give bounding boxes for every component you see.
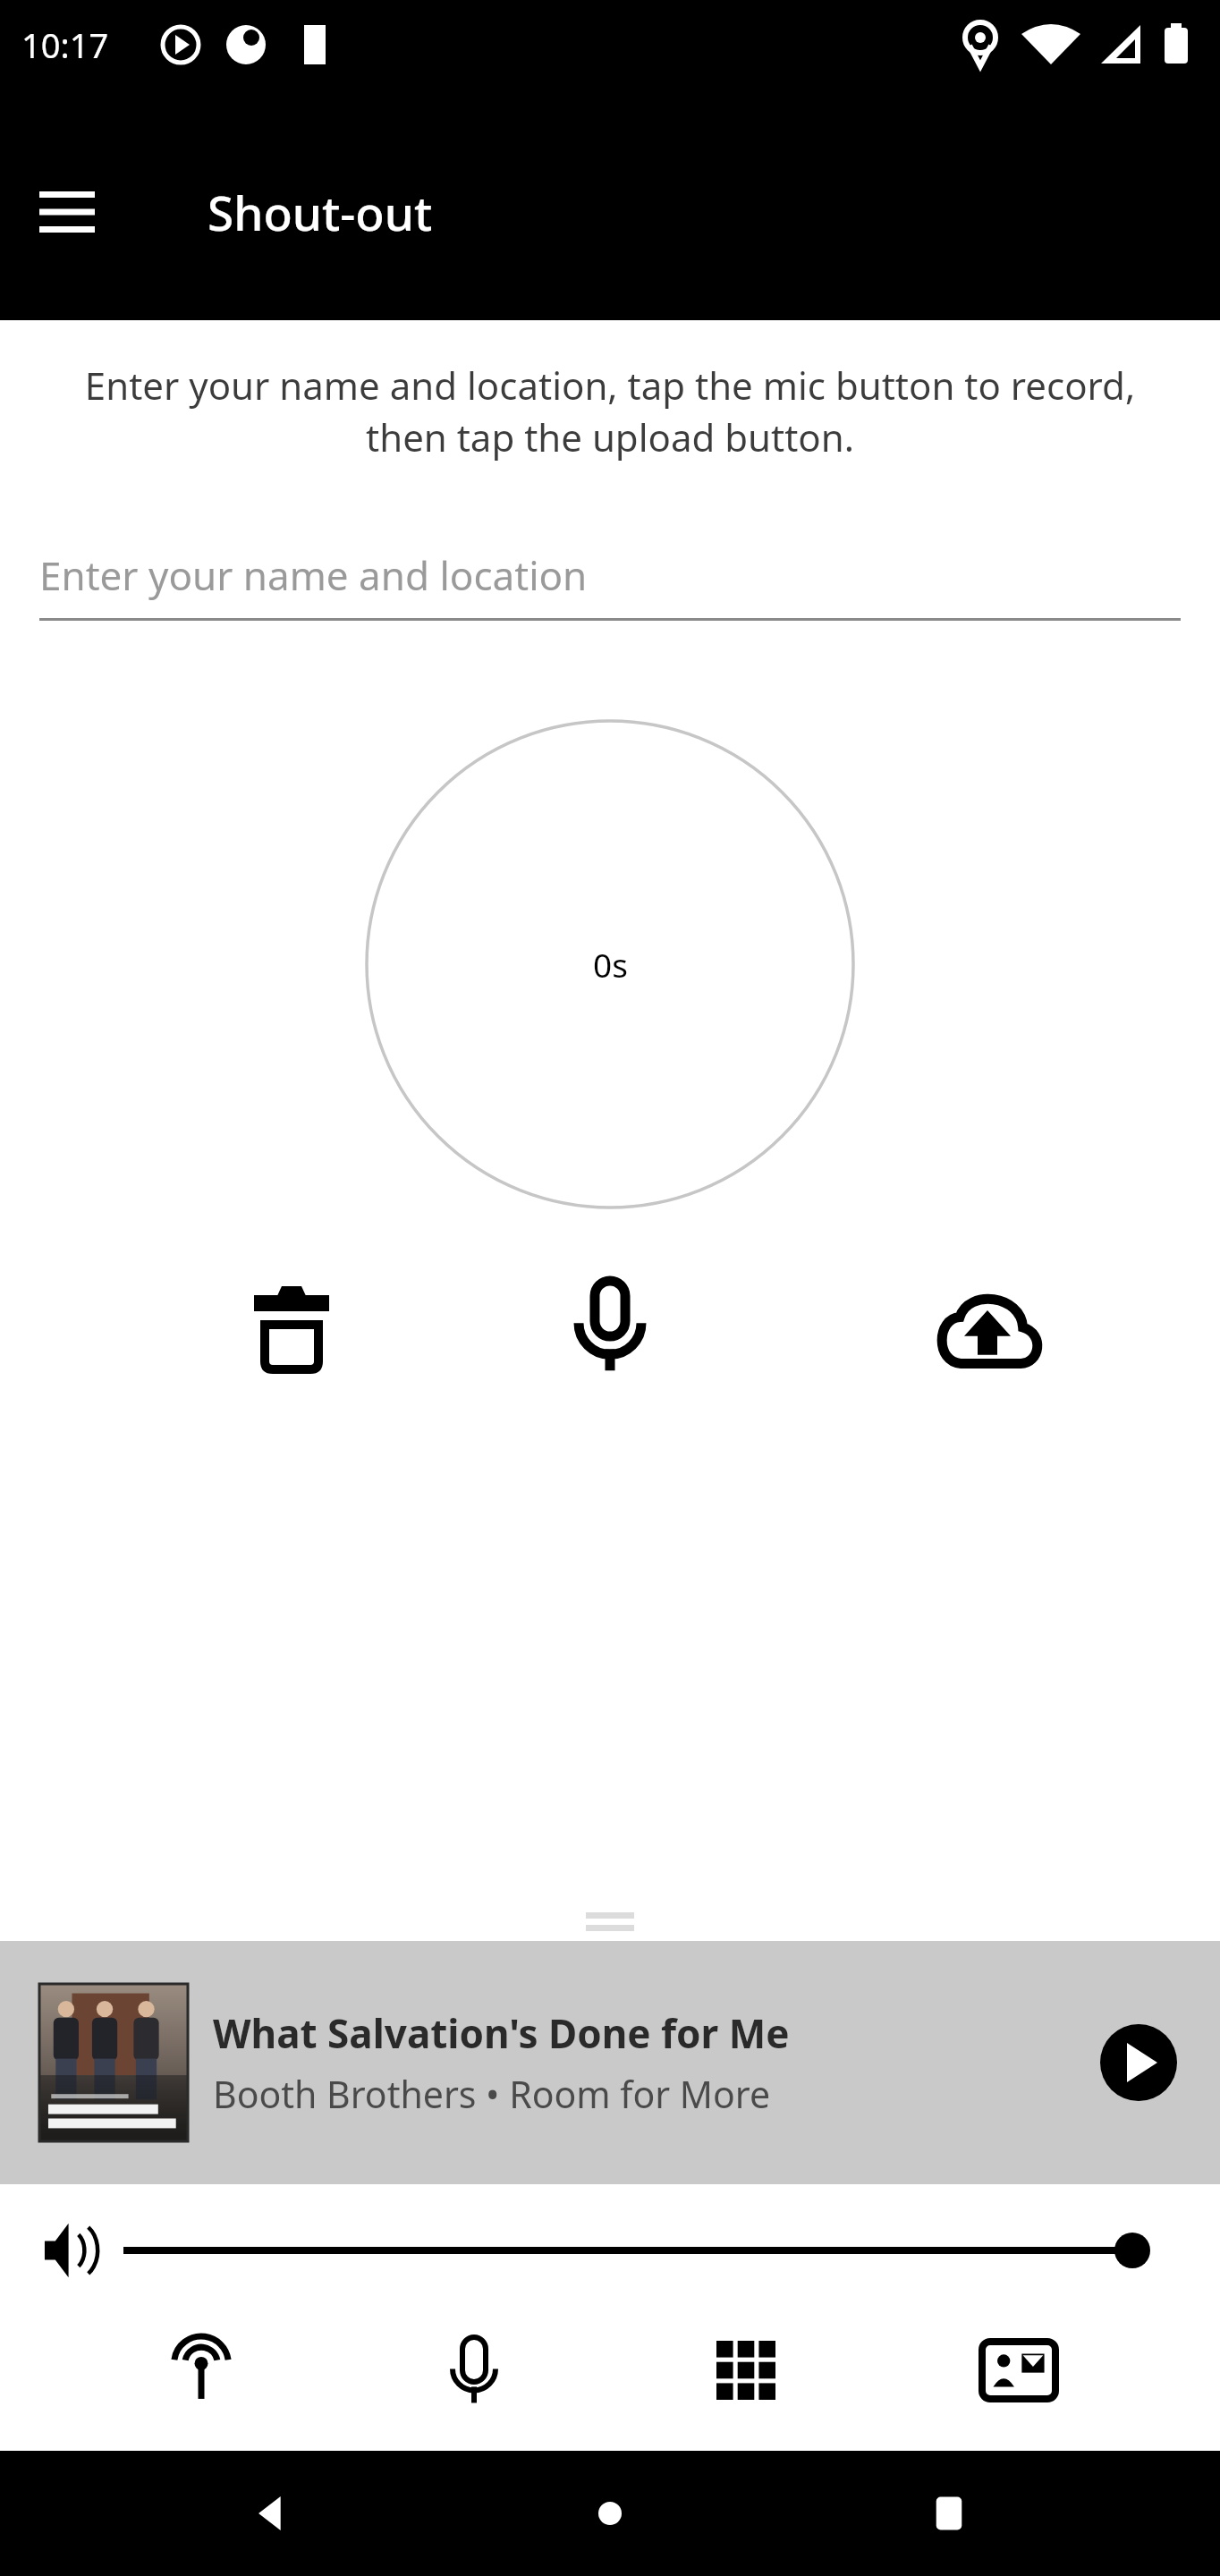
button[interactable]: Apps [674, 2317, 818, 2424]
button[interactable]: Enter your name and location [39, 548, 1181, 621]
staticText: 10:17 [21, 21, 109, 68]
button[interactable]: Broadcasts [130, 2317, 273, 2424]
staticText: Shout-out [208, 180, 433, 244]
button[interactable]: Recent apps [882, 2464, 1016, 2563]
button[interactable]: Expand player [0, 1902, 1220, 1941]
button[interactable]: Volume slider [123, 2210, 1132, 2291]
staticText: What Salvation's Done for Me [213, 2006, 790, 2060]
button[interactable]: Play [1080, 2004, 1197, 2121]
button[interactable]: Back [205, 2464, 339, 2563]
button[interactable]: Upload recording [921, 1263, 1054, 1395]
button[interactable]: Delete recording [225, 1263, 358, 1395]
staticText: Booth Brothers • Room for More [213, 2069, 771, 2119]
button[interactable]: Open navigation menu [18, 163, 116, 261]
staticText: 0s [593, 942, 628, 987]
button[interactable]: What Salvation's Done for Me [0, 1941, 1220, 2184]
button[interactable]: Record [544, 1263, 676, 1395]
button[interactable]: Record [402, 2317, 546, 2424]
button[interactable]: Contact [947, 2317, 1090, 2424]
button[interactable]: Home [543, 2464, 677, 2563]
staticText: Enter your name and location [39, 548, 588, 602]
button[interactable]: Recording timer [365, 719, 855, 1209]
staticText: Enter your name and location, tap the mi… [59, 360, 1161, 462]
button[interactable]: Volume [27, 2202, 123, 2299]
